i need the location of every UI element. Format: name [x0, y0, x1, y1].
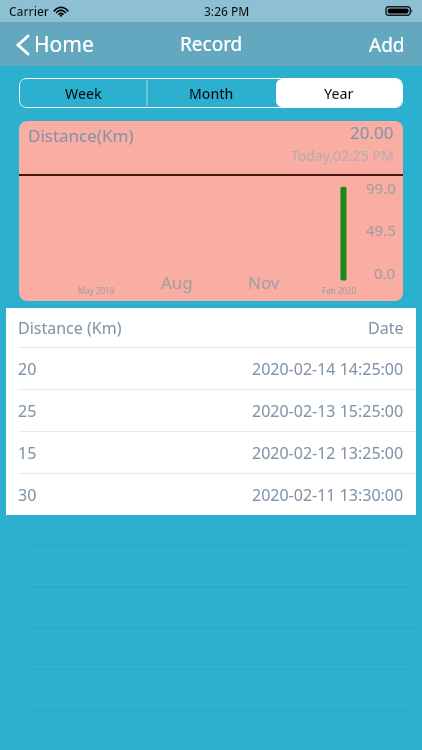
staticText: 20	[18, 358, 37, 380]
button[interactable]: Month	[147, 78, 275, 108]
button[interactable]: Home	[12, 25, 98, 64]
staticText: Year	[324, 84, 354, 103]
button[interactable]: 25	[6, 390, 416, 431]
staticText: Distance (Km)	[18, 317, 122, 339]
staticText: Date	[368, 317, 404, 339]
button[interactable]: Distance (Km)	[6, 308, 416, 347]
button[interactable]: 30	[6, 474, 416, 515]
button[interactable]: Add	[352, 22, 422, 66]
staticText: 3:26 PM	[204, 3, 250, 19]
staticText: Home	[34, 30, 94, 59]
staticText: 15	[18, 442, 37, 464]
staticText: 30	[18, 484, 37, 506]
staticText: 2020-02-11 13:30:00	[252, 484, 404, 506]
button[interactable]: Distance(Km)	[19, 121, 403, 301]
staticText: Aug	[161, 271, 193, 294]
button[interactable]: 20	[6, 348, 416, 389]
button[interactable]: Week	[19, 78, 147, 108]
button[interactable]: Year	[276, 79, 402, 107]
staticText: Nov	[248, 271, 280, 294]
staticText: May 2019	[78, 285, 115, 296]
staticText: Distance(Km)	[28, 124, 134, 147]
staticText: 99.0	[366, 178, 396, 198]
staticText: Record	[180, 31, 243, 57]
staticText: Month	[189, 84, 234, 103]
button[interactable]: 15	[6, 432, 416, 473]
staticText: 2020-02-14 14:25:00	[252, 358, 404, 380]
staticText: 49.5	[366, 220, 396, 240]
staticText: 20.00	[350, 121, 394, 144]
staticText: Add	[369, 32, 405, 56]
staticText: Carrier	[9, 3, 49, 19]
staticText: Feb 2020	[322, 285, 356, 296]
staticText: Today,02:25 PM	[291, 146, 394, 165]
staticText: 2020-02-13 15:25:00	[252, 400, 404, 422]
staticText: 0.0	[374, 263, 396, 283]
staticText: 25	[18, 400, 37, 422]
staticText: Week	[65, 84, 102, 103]
staticText: 2020-02-12 13:25:00	[252, 442, 404, 464]
